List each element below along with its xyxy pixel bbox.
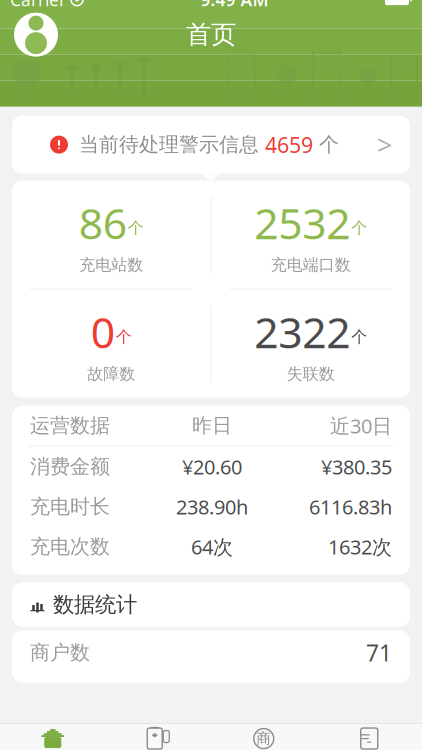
staticText: 4659 (265, 130, 313, 159)
staticText: 当前待处理警示信息 (79, 132, 265, 157)
staticText: 个 (116, 327, 132, 347)
staticText: 充电时长 (30, 494, 110, 519)
button[interactable]: 首页 (0, 724, 105, 750)
button[interactable]: 0 (12, 290, 210, 398)
staticText: Carrier (10, 0, 66, 11)
staticText: 2322 (254, 303, 350, 360)
staticText: 0 (91, 303, 115, 360)
button[interactable]: 订单 (316, 724, 422, 750)
staticText: 1632次 (328, 533, 392, 560)
staticText: 64次 (191, 533, 233, 560)
button[interactable]: Profile (14, 13, 58, 57)
staticText: 故障数 (87, 364, 135, 384)
staticText: 6116.83h (309, 493, 392, 520)
button[interactable]: 数据统计 (12, 583, 410, 627)
staticText: 充电端口数 (271, 255, 351, 275)
button[interactable]: 86 (12, 181, 210, 289)
staticText: ¥20.60 (182, 453, 242, 480)
button[interactable]: 2532 (211, 181, 410, 289)
button[interactable]: 商 (211, 724, 316, 750)
staticText: 2532 (254, 194, 350, 251)
staticText: 昨日 (192, 413, 232, 438)
staticText: 商户数 (30, 640, 90, 665)
staticText: 个 (313, 132, 339, 157)
staticText: 数据统计 (53, 591, 137, 618)
staticText: 238.90h (176, 493, 248, 520)
staticText: 首页 (186, 19, 236, 50)
button[interactable]: 充电站 (105, 724, 211, 750)
staticText: 消费金额 (30, 454, 110, 479)
staticText: 充电站数 (79, 255, 143, 275)
staticText: 个 (351, 327, 367, 347)
button[interactable]: 当前待处理警示信息 (12, 116, 410, 174)
staticText: 失联数 (287, 364, 335, 384)
staticText: 近30日 (330, 412, 392, 439)
staticText: 个 (351, 218, 367, 238)
staticText: 71 (366, 638, 392, 668)
staticText: 9:49 AM (200, 0, 268, 11)
staticText: 86 (79, 194, 127, 251)
staticText: 充电次数 (30, 534, 110, 559)
staticText: 个 (128, 218, 144, 238)
staticText: > (377, 127, 392, 162)
button[interactable]: 2322 (211, 290, 410, 398)
staticText: 商 (256, 730, 271, 748)
staticText: ¥380.35 (321, 453, 392, 480)
staticText: 运营数据 (30, 413, 110, 438)
